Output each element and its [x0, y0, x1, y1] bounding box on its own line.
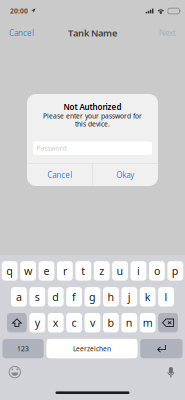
button[interactable]: z: [94, 261, 110, 281]
button[interactable]: t: [75, 261, 91, 281]
button[interactable]: Cancel: [4, 24, 39, 42]
button[interactable]: g: [85, 287, 100, 306]
button[interactable]: l: [158, 287, 174, 306]
button[interactable]: Okay: [93, 164, 158, 186]
staticText: v: [90, 316, 95, 330]
button[interactable]: Emoji: [9, 366, 21, 378]
button[interactable]: k: [140, 287, 156, 306]
staticText: f: [72, 290, 76, 304]
button[interactable]: h: [103, 287, 119, 306]
staticText: 123: [17, 344, 29, 353]
button[interactable]: x: [48, 313, 64, 332]
staticText: c: [72, 316, 77, 330]
staticText: d: [52, 290, 59, 304]
staticText: b: [107, 316, 114, 330]
button[interactable]: Leerzeichen: [46, 339, 138, 358]
staticText: q: [6, 264, 13, 278]
staticText: Tank Name: [68, 27, 117, 39]
button[interactable]: e: [39, 261, 54, 281]
button[interactable]: m: [140, 313, 156, 332]
staticText: m: [143, 316, 153, 330]
staticText: Password: [36, 144, 66, 153]
button[interactable]: w: [20, 261, 36, 281]
button[interactable]: d: [48, 287, 64, 306]
button[interactable]: Dictation: [167, 367, 175, 378]
button[interactable]: Next: [154, 24, 181, 42]
staticText: Not Authorized: [63, 102, 121, 112]
button[interactable]: Shift: [7, 313, 27, 332]
staticText: r: [63, 264, 67, 278]
button[interactable]: v: [85, 313, 100, 332]
staticText: Leerzeichen: [73, 344, 111, 353]
staticText: x: [53, 316, 59, 330]
staticText: h: [107, 290, 114, 304]
button[interactable]: o: [149, 261, 165, 281]
staticText: z: [99, 264, 104, 278]
staticText: Cancel: [47, 170, 72, 180]
staticText: a: [16, 290, 22, 304]
button[interactable]: b: [103, 313, 119, 332]
button[interactable]: a: [11, 287, 27, 306]
button[interactable]: c: [66, 313, 82, 332]
button[interactable]: u: [112, 261, 128, 281]
staticText: Please enter your password for: [43, 112, 142, 120]
button[interactable]: r: [57, 261, 73, 281]
staticText: Cancel: [9, 28, 34, 38]
staticText: w: [24, 264, 32, 278]
button[interactable]: Delete: [158, 313, 178, 332]
staticText: u: [117, 264, 124, 278]
staticText: p: [172, 264, 179, 278]
staticText: n: [126, 316, 133, 330]
button[interactable]: n: [121, 313, 137, 332]
staticText: Okay: [116, 170, 134, 180]
button[interactable]: s: [29, 287, 45, 306]
staticText: i: [137, 264, 140, 278]
button[interactable]: Return: [140, 339, 182, 358]
staticText: y: [35, 316, 40, 330]
staticText: j: [128, 290, 131, 304]
staticText: 20:00: [10, 7, 28, 15]
staticText: Next: [159, 28, 176, 38]
button[interactable]: Cancel: [27, 164, 92, 186]
button[interactable]: 123: [2, 339, 44, 358]
button[interactable]: p: [167, 261, 183, 281]
staticText: this device.: [75, 120, 110, 128]
staticText: e: [43, 264, 49, 278]
button[interactable]: q: [2, 261, 18, 281]
staticText: s: [35, 290, 40, 304]
staticText: o: [154, 264, 160, 278]
staticText: g: [89, 290, 96, 304]
button[interactable]: j: [121, 287, 137, 306]
button[interactable]: f: [66, 287, 82, 306]
staticText: k: [145, 290, 151, 304]
button[interactable]: i: [131, 261, 146, 281]
button[interactable]: y: [29, 313, 45, 332]
staticText: t: [81, 264, 85, 278]
staticText: l: [165, 290, 168, 304]
